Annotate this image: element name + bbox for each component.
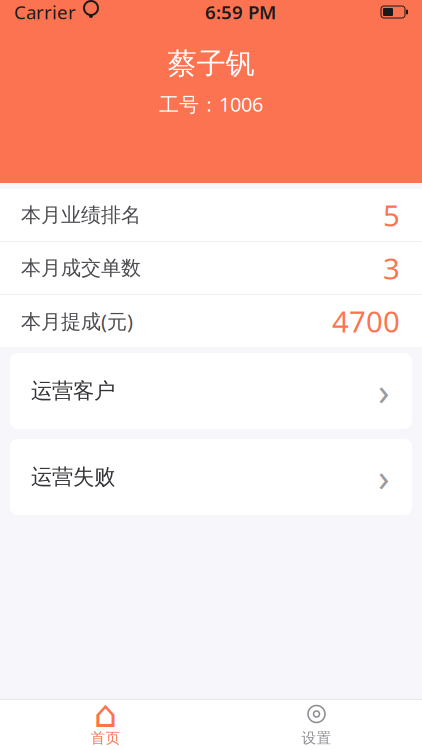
staticText: ›: [378, 452, 390, 502]
staticText: 运营客户: [31, 378, 115, 404]
button[interactable]: 运营失败: [10, 439, 412, 515]
staticText: 蔡子钒: [167, 46, 254, 82]
button[interactable]: 设置: [211, 700, 422, 750]
staticText: ⌂: [93, 693, 117, 735]
staticText: 4700: [332, 301, 400, 340]
staticText: 6:59 PM: [205, 0, 276, 24]
staticText: 3: [383, 248, 400, 287]
staticText: 首页: [90, 729, 120, 747]
staticText: 本月成交单数: [21, 256, 141, 280]
staticText: 本月业绩排名: [21, 203, 141, 227]
staticText: 5: [383, 195, 400, 234]
staticText: ›: [378, 366, 390, 416]
button[interactable]: 运营客户: [10, 353, 412, 429]
staticText: 本月提成(元): [21, 308, 133, 334]
button[interactable]: ⌂: [0, 700, 211, 750]
staticText: Carrier: [14, 0, 76, 24]
staticText: 工号：1006: [159, 91, 263, 117]
staticText: 运营失败: [31, 464, 115, 490]
staticText: 设置: [301, 729, 331, 747]
